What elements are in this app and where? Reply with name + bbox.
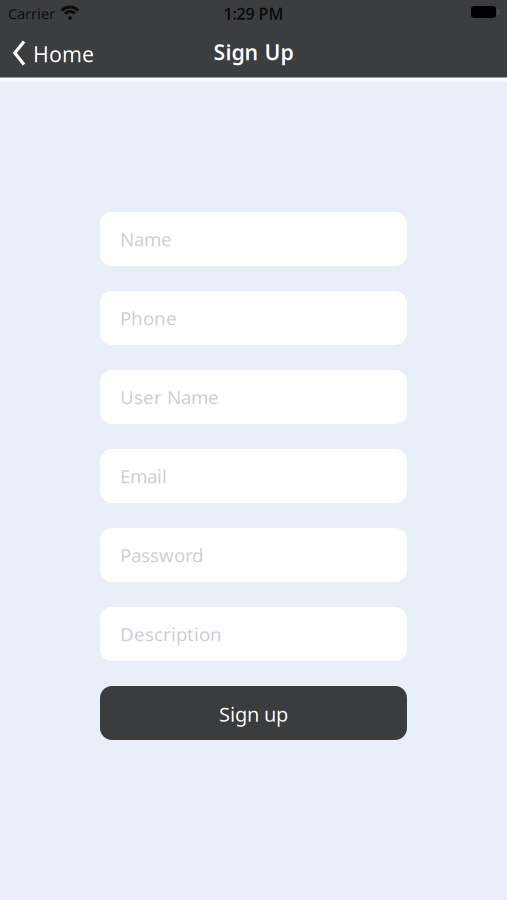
staticText: Phone (120, 306, 177, 330)
textField[interactable]: Name (100, 212, 407, 266)
textField[interactable]: Description (100, 607, 407, 661)
button[interactable]: Home (0, 36, 94, 68)
staticText: Sign up (219, 701, 288, 727)
staticText: Name (120, 227, 172, 251)
staticText: User Name (120, 385, 219, 409)
textField[interactable]: Password (100, 528, 407, 582)
staticText: Password (120, 543, 203, 567)
staticText: 1:29 PM (223, 3, 283, 24)
staticText: Home (33, 40, 94, 68)
textField[interactable]: Email (100, 449, 407, 503)
staticText: Email (120, 464, 167, 488)
textField[interactable]: User Name (100, 370, 407, 424)
staticText: Carrier (8, 4, 55, 23)
staticText: Description (120, 622, 222, 646)
staticText: Sign Up (213, 38, 293, 66)
button[interactable]: Sign up (100, 686, 407, 740)
textField[interactable]: Phone (100, 291, 407, 345)
